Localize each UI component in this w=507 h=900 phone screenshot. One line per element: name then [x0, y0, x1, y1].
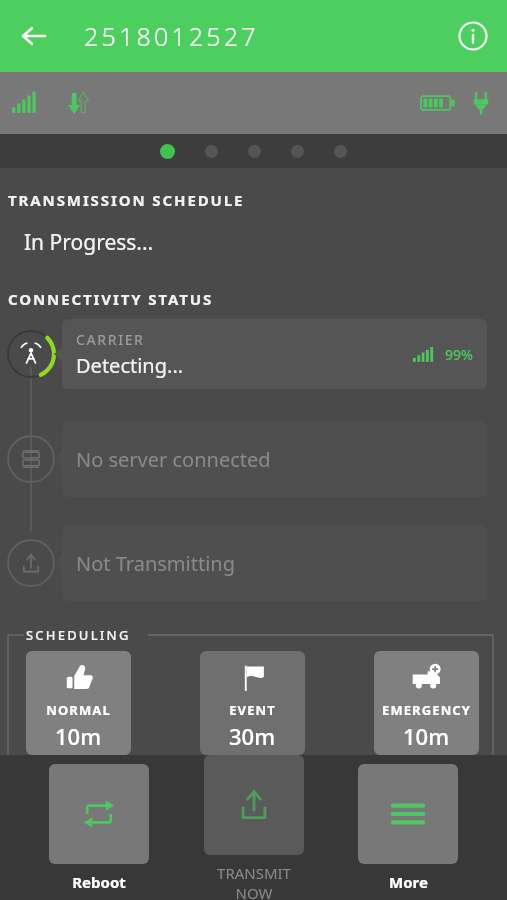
button[interactable]: NORMAL: [26, 651, 131, 755]
button[interactable]: No server connected: [0, 421, 507, 497]
button[interactable]: Reboot: [44, 764, 154, 892]
staticText: 10m: [55, 721, 102, 751]
staticText: In Progress...: [24, 228, 154, 257]
button[interactable]: Page 4: [291, 145, 304, 158]
button[interactable]: Page 1: [160, 144, 175, 159]
staticText: SCHEDULING: [26, 626, 131, 644]
staticText: NORMAL: [46, 701, 111, 719]
staticText: Detecting...: [76, 352, 184, 379]
staticText: CARRIER: [76, 330, 145, 349]
button[interactable]: TRANSMIT NOW: [199, 755, 309, 900]
staticText: No server connected: [76, 446, 271, 473]
button[interactable]: CARRIER: [0, 319, 507, 389]
staticText: More: [389, 872, 428, 892]
staticText: TRANSMISSION SCHEDULE: [8, 190, 245, 210]
staticText: TRANSMIT NOW: [199, 863, 309, 900]
button[interactable]: Back: [8, 10, 60, 62]
staticText: CONNECTIVITY STATUS: [8, 289, 214, 309]
button[interactable]: Page 5: [334, 145, 347, 158]
staticText: EVENT: [229, 701, 276, 719]
staticText: 30m: [229, 721, 276, 751]
button[interactable]: Not Transmitting: [0, 525, 507, 601]
button[interactable]: EVENT: [200, 651, 305, 755]
staticText: EMERGENCY: [382, 701, 471, 719]
button[interactable]: Page 3: [248, 145, 261, 158]
button[interactable]: EMERGENCY: [374, 651, 479, 755]
button[interactable]: Info: [449, 12, 497, 60]
staticText: 99%: [445, 345, 473, 364]
staticText: 10m: [403, 721, 450, 751]
staticText: 2518012527: [84, 19, 259, 53]
staticText: Not Transmitting: [76, 550, 235, 577]
button[interactable]: Page 2: [205, 145, 218, 158]
staticText: Reboot: [72, 872, 126, 892]
button[interactable]: More: [353, 764, 463, 892]
